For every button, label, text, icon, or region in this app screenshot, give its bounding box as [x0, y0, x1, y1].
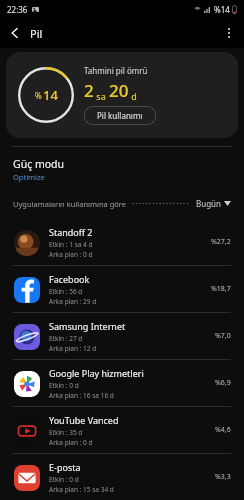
button[interactable]: % [6, 52, 238, 138]
button[interactable]: Bugün [196, 198, 231, 209]
staticText: Uygulamaların kullanımına göre [13, 199, 127, 209]
staticText: YouTube Vanced [49, 414, 119, 426]
button[interactable]: More options [214, 18, 244, 48]
staticText: 22:36 [7, 4, 28, 15]
staticText: Optimize [13, 172, 45, 182]
staticText: Pil kullanımı [97, 110, 143, 121]
staticText: 20 [109, 79, 129, 102]
button[interactable]: Standoff 2 [0, 219, 244, 265]
staticText: Samsung Internet [49, 320, 126, 332]
staticText: sa [94, 90, 109, 102]
staticText: Arka plan : 16 sa 16 d [49, 391, 114, 400]
button[interactable]: Pil kullanımı [84, 106, 156, 125]
staticText: Etkin : 35 d [49, 428, 83, 437]
button[interactable]: E-posta [0, 454, 244, 500]
staticText: %3,3 [215, 472, 231, 482]
button[interactable]: Back [0, 18, 30, 48]
staticText: Etkin : 1 sa 4 d [49, 240, 93, 249]
staticText: E-posta [49, 461, 81, 473]
button[interactable]: YouTube Vanced [0, 407, 244, 453]
staticText: %14 [214, 4, 230, 15]
button[interactable]: Samsung Internet [0, 313, 244, 359]
staticText: %27,2 [211, 237, 231, 247]
staticText: Etkin : 0 d [49, 381, 79, 390]
staticText: Güç modu [13, 157, 65, 171]
staticText: %7,0 [215, 331, 231, 341]
staticText: %18,7 [211, 284, 231, 294]
button[interactable]: Facebook [0, 266, 244, 312]
staticText: Standoff 2 [49, 226, 93, 238]
staticText: Google Play hizmetleri [49, 367, 144, 379]
staticText: d [129, 90, 137, 102]
staticText: Arka plan : 29 d [49, 297, 97, 306]
button[interactable]: Güç modu [0, 157, 244, 182]
staticText: 14 [43, 86, 58, 104]
staticText: %4,6 [215, 425, 231, 435]
staticText: Arka plan : 0 d [49, 250, 93, 259]
staticText: 2 [84, 79, 94, 102]
staticText: Arka plan : 12 d [49, 344, 97, 353]
staticText: Facebook [49, 273, 90, 285]
staticText: Bugün [196, 198, 221, 209]
staticText: Arka plan : 0 d [49, 438, 93, 447]
staticText: % [35, 90, 42, 101]
button[interactable]: Google Play hizmetleri [0, 360, 244, 406]
staticText: %6,9 [215, 378, 231, 388]
staticText: Etkin : 27 d [49, 334, 83, 343]
staticText: Arka plan : 15 sa 34 d [49, 485, 114, 494]
staticText: Etkin : 56 d [49, 287, 83, 296]
staticText: Tahmini pil ömrü [84, 65, 148, 76]
staticText: Etkin : 0 d [49, 475, 79, 484]
staticText: Pil [30, 26, 43, 41]
